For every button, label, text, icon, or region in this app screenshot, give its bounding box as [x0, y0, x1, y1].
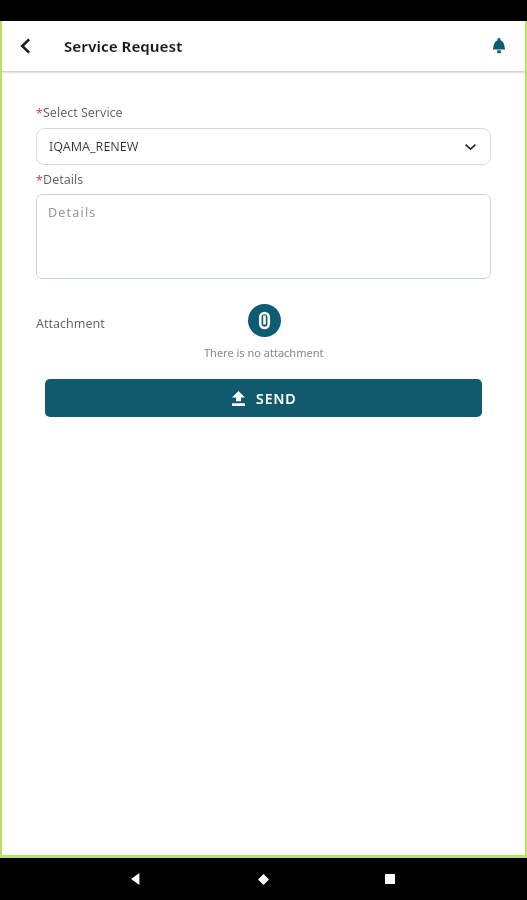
staticText: IQAMA_RENEW — [49, 138, 139, 155]
button[interactable]: Back — [6, 26, 46, 66]
button[interactable]: Recent apps — [370, 859, 410, 899]
staticText: Attachment — [36, 315, 105, 332]
button[interactable]: Back — [116, 859, 156, 899]
button[interactable]: Home — [243, 859, 283, 899]
button[interactable]: Details — [36, 194, 491, 279]
button[interactable]: Notifications — [479, 26, 519, 66]
button[interactable]: IQAMA_RENEW — [36, 128, 491, 165]
button[interactable]: SEND — [45, 379, 482, 417]
staticText: Details — [48, 204, 97, 221]
button[interactable]: Add attachment — [248, 304, 281, 337]
staticText: Details — [43, 171, 84, 188]
staticText: SEND — [256, 389, 297, 408]
staticText: Select Service — [43, 104, 123, 121]
staticText: * — [36, 105, 43, 121]
staticText: Service Request — [64, 36, 183, 56]
staticText: There is no attachment — [204, 345, 324, 360]
staticText: * — [36, 172, 43, 188]
